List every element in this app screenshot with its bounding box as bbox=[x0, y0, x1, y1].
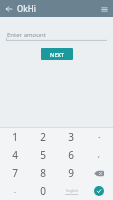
button[interactable]: Enter amount bbox=[6, 28, 107, 41]
button[interactable]: 1 bbox=[0, 128, 29, 146]
button[interactable]: Back bbox=[3, 3, 15, 15]
button[interactable]: 9 bbox=[57, 164, 85, 182]
staticText: 5 bbox=[40, 148, 46, 162]
staticText: , bbox=[98, 150, 100, 160]
button[interactable]: 0 bbox=[29, 182, 57, 200]
button[interactable]: 4 bbox=[0, 146, 29, 164]
staticText: 1 bbox=[12, 130, 18, 144]
button[interactable]: , bbox=[85, 146, 113, 164]
button[interactable]: 6 bbox=[57, 146, 85, 164]
button[interactable]: 8 bbox=[29, 164, 57, 182]
staticText: - bbox=[98, 132, 101, 142]
button[interactable]: English bbox=[57, 182, 85, 200]
staticText: 2 bbox=[40, 130, 46, 144]
staticText: . bbox=[14, 186, 16, 196]
button[interactable]: Enter bbox=[85, 182, 113, 200]
button[interactable]: 5 bbox=[29, 146, 57, 164]
staticText: 0 bbox=[40, 184, 46, 198]
staticText: English bbox=[66, 188, 78, 193]
staticText: NEXT bbox=[50, 51, 64, 58]
button[interactable]: 3 bbox=[57, 128, 85, 146]
staticText: 9 bbox=[68, 166, 74, 180]
staticText: 4 bbox=[12, 148, 18, 162]
button[interactable]: Backspace bbox=[85, 164, 113, 182]
staticText: 3 bbox=[68, 130, 74, 144]
button[interactable]: NEXT bbox=[41, 48, 73, 60]
staticText: 7 bbox=[12, 166, 18, 180]
staticText: Enter amount bbox=[7, 31, 46, 39]
button[interactable]: 2 bbox=[29, 128, 57, 146]
button[interactable]: 7 bbox=[0, 164, 29, 182]
staticText: 6 bbox=[68, 148, 74, 162]
staticText: OkHi bbox=[17, 3, 36, 14]
button[interactable]: . bbox=[0, 182, 29, 200]
button[interactable]: - bbox=[85, 128, 113, 146]
button[interactable]: More options bbox=[98, 3, 110, 15]
staticText: 8 bbox=[40, 166, 46, 180]
